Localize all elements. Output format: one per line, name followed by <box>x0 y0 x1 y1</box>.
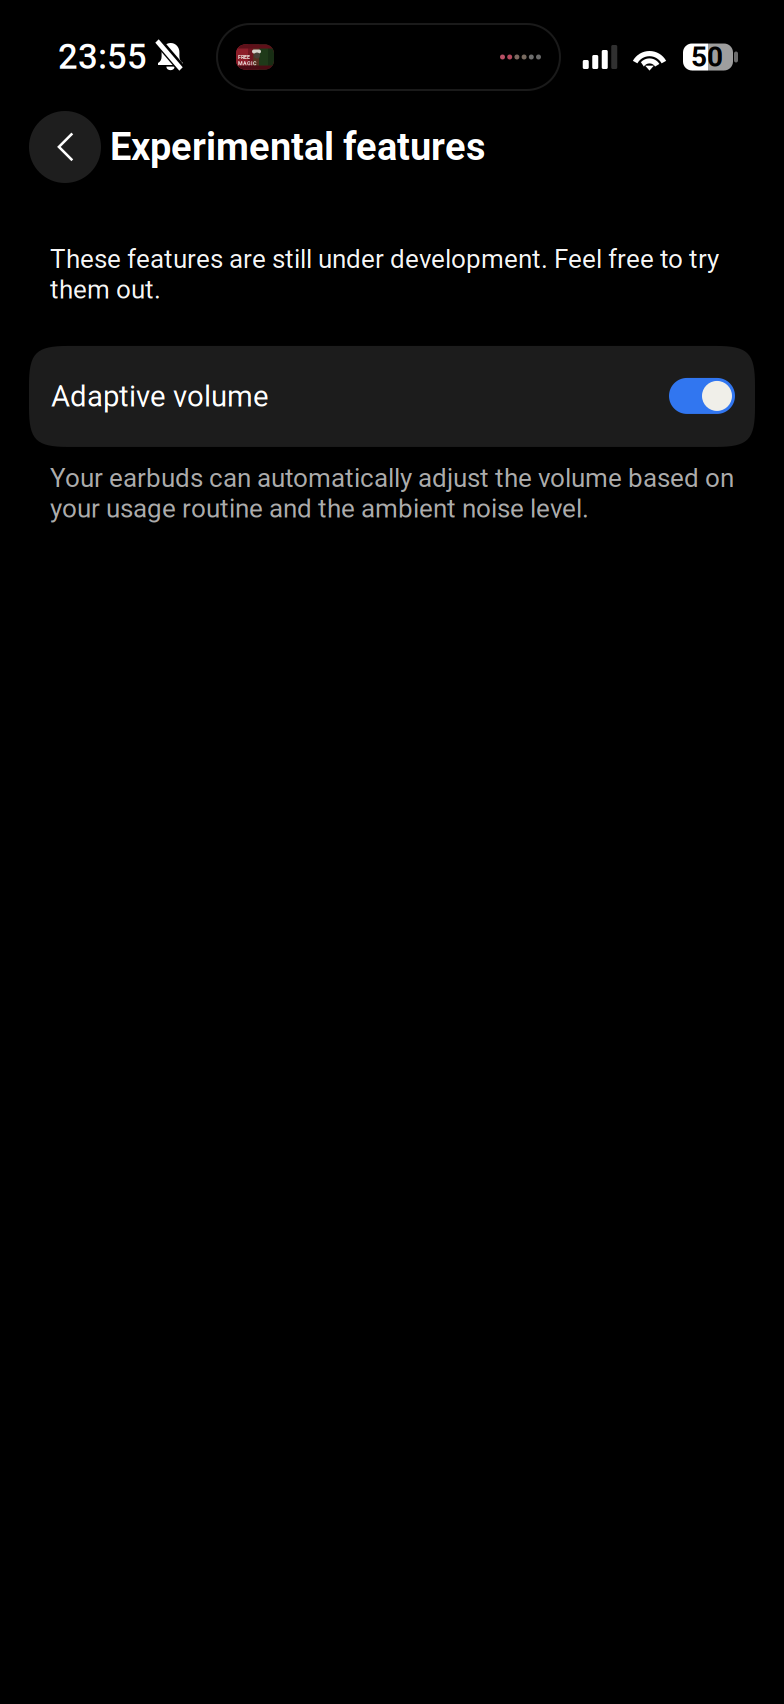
staticText: MAGIC <box>238 60 256 66</box>
button[interactable]: Back <box>29 111 101 183</box>
staticText: 50 <box>691 41 723 73</box>
staticText: Adaptive volume <box>51 379 269 414</box>
staticText: Your earbuds can automatically adjust th… <box>50 463 734 524</box>
button[interactable]: Adaptive volume <box>29 346 755 447</box>
staticText: 23:55 <box>58 37 147 77</box>
staticText: Experimental features <box>110 125 486 169</box>
staticText: These features are still under developme… <box>50 244 719 305</box>
staticText: FREE <box>238 54 250 60</box>
